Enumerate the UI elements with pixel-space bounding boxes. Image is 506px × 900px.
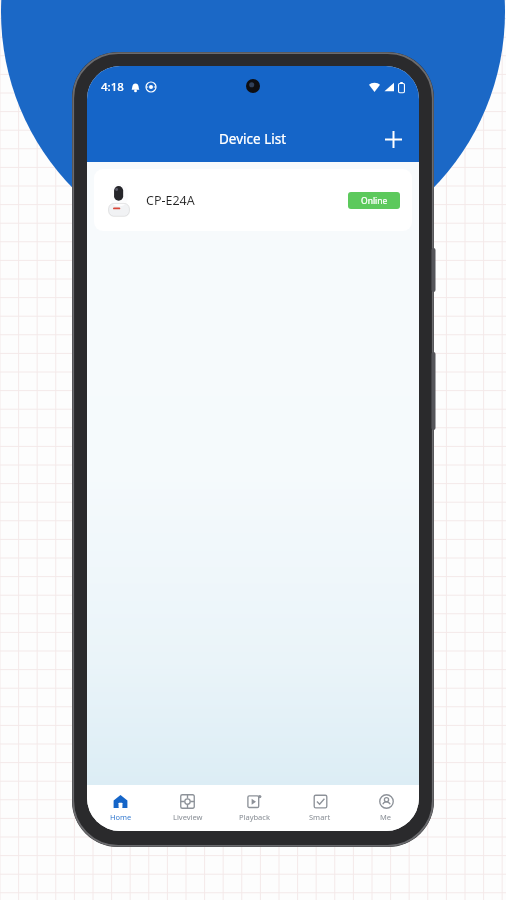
staticText: CP-E24A — [146, 192, 195, 209]
button[interactable]: Home — [87, 785, 154, 831]
staticText: Home — [110, 812, 132, 822]
button[interactable]: Add device — [373, 119, 413, 159]
staticText: Device List — [219, 130, 287, 148]
button[interactable]: Online — [348, 192, 400, 209]
staticText: Liveview — [173, 812, 203, 822]
staticText: 4:18 — [101, 79, 124, 95]
staticText: Playback — [239, 812, 270, 822]
button[interactable]: CP-E24A — [94, 169, 412, 231]
button[interactable]: Liveview — [154, 785, 221, 831]
staticText: Smart — [309, 812, 331, 822]
button[interactable]: Me — [353, 785, 419, 831]
staticText: Me — [380, 812, 392, 822]
button[interactable]: Playback — [221, 785, 287, 831]
button[interactable]: Smart — [287, 785, 353, 831]
staticText: Online — [361, 195, 388, 207]
